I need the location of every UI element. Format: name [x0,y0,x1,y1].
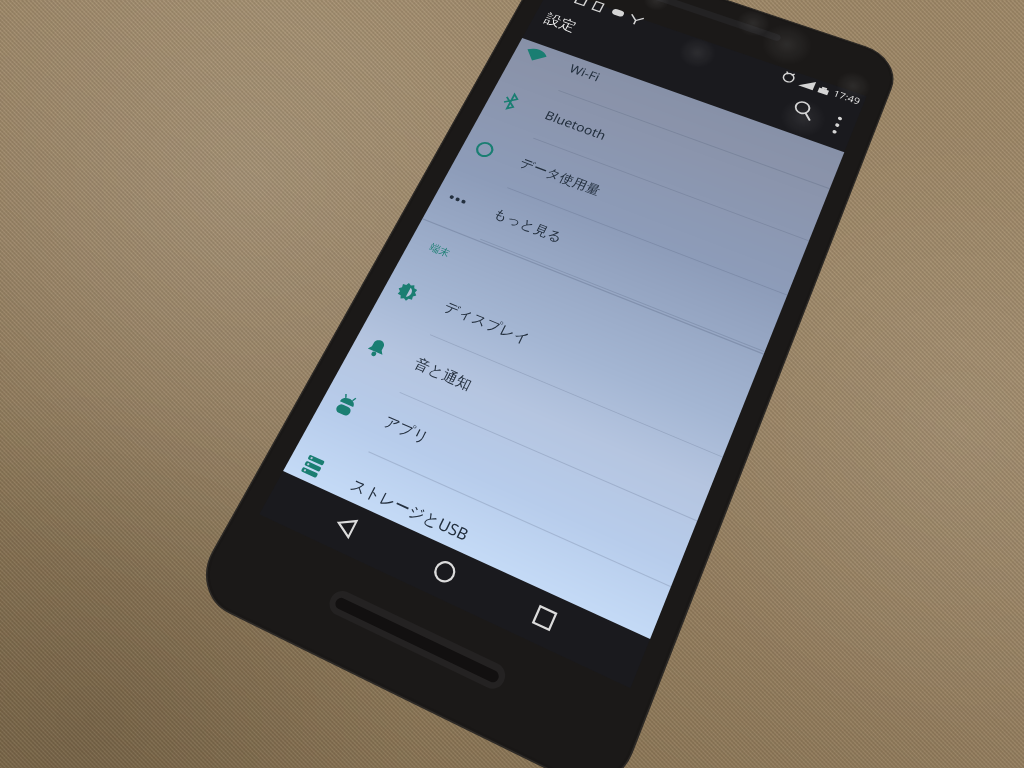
button[interactable]: Android settings screen [0,0,1024,768]
